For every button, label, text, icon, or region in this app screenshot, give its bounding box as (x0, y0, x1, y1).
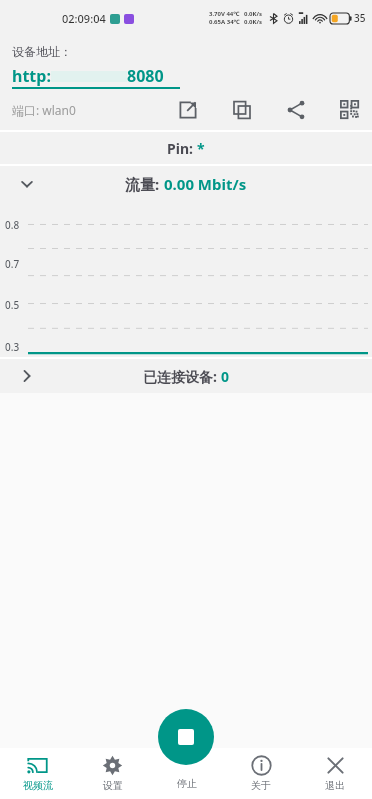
button[interactable]: Expand connected devices (0, 359, 372, 393)
staticText: 35 (354, 11, 366, 25)
other: Expand connected devices (16, 365, 38, 387)
staticText: 设置 (103, 779, 123, 792)
button[interactable]: Stop streaming (158, 709, 214, 765)
staticText: 0.00 Mbit/s (164, 174, 247, 194)
staticText: 停止 (177, 777, 197, 790)
button[interactable]: http: (12, 65, 364, 87)
staticText: 0.5 (5, 298, 20, 312)
staticText: 0.3 (5, 340, 20, 354)
staticText: 已连接设备: (143, 367, 221, 386)
button[interactable]: 关于 (224, 748, 298, 799)
staticText: 0 (221, 367, 230, 386)
button[interactable]: Show QR code (336, 96, 364, 124)
staticText: Pin: (167, 139, 197, 158)
staticText: 0.0K/s (244, 18, 263, 26)
button[interactable]: Copy address (228, 96, 256, 124)
button[interactable]: 停止 (150, 748, 224, 799)
staticText: 关于 (251, 779, 271, 792)
button[interactable]: 视频流 (0, 748, 75, 799)
staticText: 0.8 (5, 218, 20, 232)
button[interactable]: Share (282, 96, 310, 124)
button[interactable]: 退出 (298, 748, 372, 799)
staticText: 流量: (125, 174, 164, 194)
other: Collapse traffic chart (16, 173, 38, 195)
button[interactable]: Pin: (0, 132, 372, 164)
staticText: 端口: wlan0 (12, 102, 76, 118)
button[interactable]: Collapse traffic chart (0, 166, 372, 202)
staticText: 视频流 (23, 779, 53, 792)
staticText: 8080 (127, 65, 164, 87)
staticText: 02:09:04 (62, 11, 106, 26)
staticText: 设备地址： (12, 44, 72, 59)
staticText: 0.7 (5, 257, 20, 271)
staticText: 退出 (325, 779, 345, 792)
button[interactable]: Open in browser (174, 96, 202, 124)
staticText: * (197, 139, 205, 158)
staticText: http: (12, 65, 51, 87)
staticText: 0.0K/s (244, 10, 263, 18)
staticText: 0.65A 34℃ (209, 18, 240, 26)
staticText: 3.70V 44℃ (209, 10, 240, 18)
button[interactable]: 设置 (75, 748, 150, 799)
